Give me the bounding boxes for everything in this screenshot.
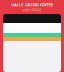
staticText: DAILY GRIND COFFEE — [11, 2, 53, 7]
staticText: order #1842 — [22, 8, 41, 12]
